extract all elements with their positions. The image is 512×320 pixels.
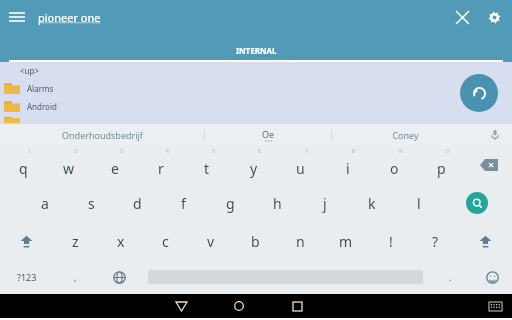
staticText: n [296, 232, 305, 251]
button[interactable]: ! [368, 222, 413, 260]
button[interactable]: d [114, 184, 160, 222]
button[interactable]: 9 [371, 146, 418, 184]
button[interactable]: Change language [96, 260, 142, 294]
staticText: <up> [20, 65, 40, 76]
staticText: Oe [262, 128, 275, 140]
button[interactable]: Backspace [465, 146, 512, 184]
button[interactable]: ? [413, 222, 458, 260]
staticText: 2 [74, 148, 77, 155]
button[interactable]: Keyboard [478, 294, 512, 318]
button[interactable]: Menu [0, 0, 34, 34]
staticText: 6 [258, 148, 261, 155]
button[interactable]: , [54, 260, 96, 294]
button[interactable]: h [254, 184, 301, 222]
staticText: Alarms [27, 83, 54, 94]
staticText: Android [27, 101, 57, 112]
staticText: pioneer one [38, 10, 101, 25]
button[interactable]: b [233, 222, 278, 260]
staticText: l [417, 194, 421, 213]
button[interactable]: m [323, 222, 368, 260]
button[interactable]: n [278, 222, 323, 260]
staticText: t [204, 159, 210, 178]
staticText: p [437, 159, 446, 178]
button[interactable]: 4 [138, 146, 184, 184]
button[interactable]: Oe [205, 124, 331, 146]
button[interactable]: Back [161, 294, 201, 318]
button[interactable]: Home [219, 294, 259, 318]
button[interactable]: <up> [0, 62, 512, 79]
button[interactable]: s [68, 184, 114, 222]
staticText: 4 [166, 148, 169, 155]
staticText: h [273, 194, 282, 213]
staticText: s [88, 194, 95, 213]
staticText: e [111, 159, 119, 178]
button[interactable]: k [348, 184, 395, 222]
button[interactable]: Shift [458, 222, 512, 260]
staticText: w [63, 159, 75, 178]
button[interactable]: z [53, 222, 98, 260]
staticText: f [181, 194, 186, 213]
staticText: 0 [446, 148, 449, 155]
button[interactable]: v [188, 222, 233, 260]
staticText: Onderhoudsbedrijf [62, 129, 143, 141]
button[interactable]: f [160, 184, 207, 222]
button[interactable]: 5 [184, 146, 230, 184]
button[interactable]: 0 [418, 146, 465, 184]
staticText: ?123 [17, 271, 37, 283]
staticText: INTERNAL [236, 45, 277, 56]
staticText: 5 [212, 148, 215, 155]
button[interactable]: 2 [46, 146, 92, 184]
button[interactable]: Shift [0, 222, 53, 260]
button[interactable]: 7 [277, 146, 324, 184]
button[interactable]: j [301, 184, 348, 222]
staticText: k [368, 194, 376, 213]
button[interactable]: Voice input [478, 124, 512, 146]
button[interactable]: INTERNAL [0, 38, 512, 62]
button[interactable]: 8 [324, 146, 371, 184]
staticText: ! [389, 232, 393, 251]
staticText: x [117, 232, 125, 251]
staticText: u [296, 159, 305, 178]
staticText: r [158, 159, 164, 178]
button[interactable]: ?123 [0, 260, 54, 294]
staticText: j [323, 194, 327, 213]
button[interactable]: 1 [0, 146, 46, 184]
button[interactable]: 3 [92, 146, 138, 184]
staticText: d [133, 194, 142, 213]
staticText: ? [432, 232, 439, 251]
button[interactable]: l [395, 184, 442, 222]
button[interactable]: Emoji [472, 260, 512, 294]
staticText: y [250, 159, 258, 178]
button[interactable]: c [143, 222, 188, 260]
staticText: 7 [305, 148, 308, 155]
button[interactable]: 6 [230, 146, 277, 184]
button[interactable]: g [207, 184, 254, 222]
staticText: o [390, 159, 399, 178]
staticText: 8 [352, 148, 355, 155]
button[interactable]: pioneer one [38, 10, 101, 25]
button[interactable]: Settings [478, 1, 510, 33]
button[interactable]: Refresh [460, 74, 498, 112]
button[interactable]: Coney [332, 124, 478, 146]
staticText: , [74, 271, 77, 283]
staticText: a [41, 194, 49, 213]
staticText: b [251, 232, 260, 251]
button[interactable]: Onderhoudsbedrijf [0, 124, 204, 146]
button[interactable]: a [22, 184, 68, 222]
button[interactable]: x [98, 222, 143, 260]
staticText: q [19, 159, 28, 178]
staticText: g [226, 194, 235, 213]
staticText: z [72, 232, 79, 251]
staticText: i [346, 159, 350, 178]
staticText: v [207, 232, 215, 251]
button[interactable]: Search [442, 184, 512, 222]
button[interactable] [0, 115, 512, 124]
staticText: m [339, 232, 353, 251]
button[interactable]: Close [446, 1, 478, 33]
button[interactable]: Recent apps [277, 294, 317, 318]
button[interactable]: Android [0, 97, 512, 115]
button[interactable]: Alarms [0, 79, 512, 97]
button[interactable]: Space [142, 260, 428, 294]
staticText: 1 [28, 148, 31, 155]
